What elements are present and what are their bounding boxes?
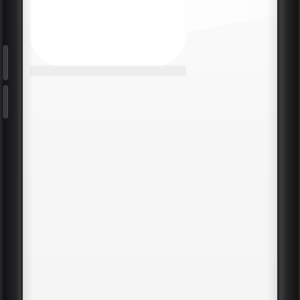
button[interactable]: Black phone case product photo: [0, 0, 300, 300]
